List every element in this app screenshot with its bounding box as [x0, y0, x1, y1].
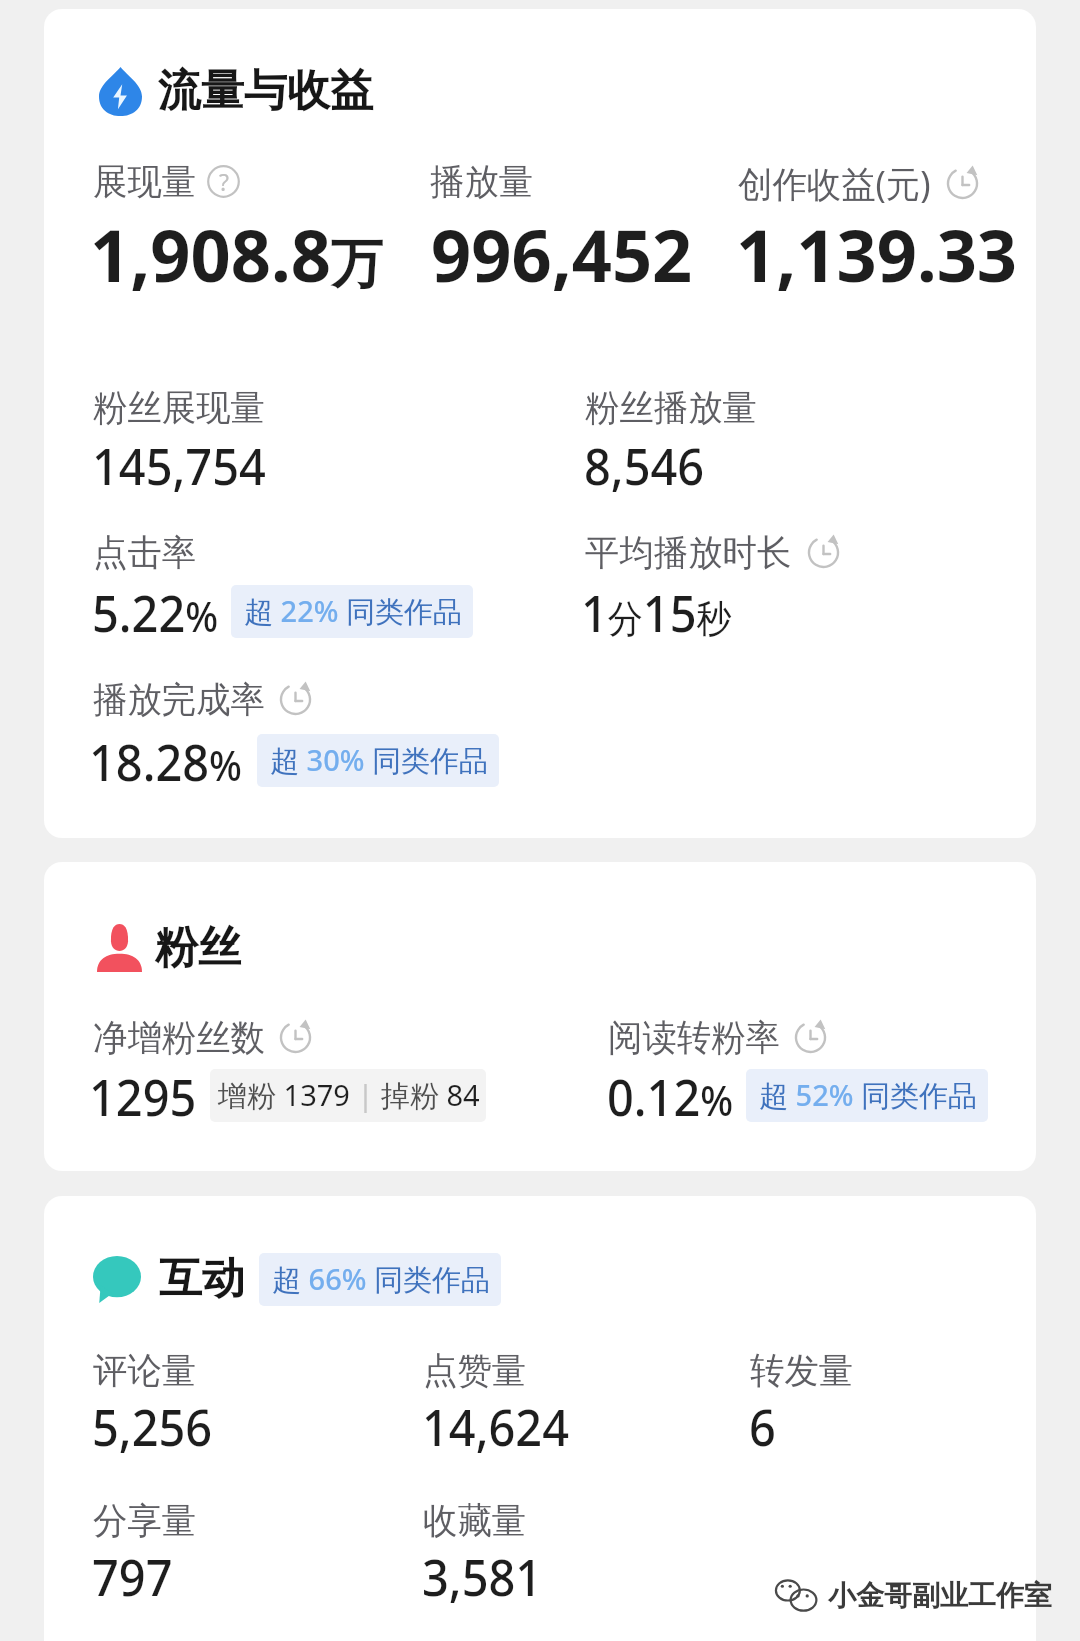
staticText: 1,908.8万: [90, 205, 383, 304]
staticText: 14,624: [422, 1391, 569, 1460]
staticText: 18.28%: [89, 726, 243, 795]
button[interactable]: 145,754: [92, 430, 281, 499]
button[interactable]: 1,139.33: [736, 205, 1040, 309]
staticText: 点击率: [93, 530, 196, 575]
button[interactable]: 展现量: [93, 159, 240, 204]
button[interactable]: 粉丝: [97, 921, 241, 975]
button[interactable]: 996,452: [431, 205, 714, 309]
button[interactable]: 分享量: [93, 1498, 201, 1543]
button[interactable]: 创作收益(元): [738, 159, 979, 208]
staticText: ?: [219, 166, 229, 197]
staticText: 净增粉丝数: [93, 1015, 265, 1060]
button[interactable]: 1,908.8万: [90, 205, 407, 309]
button[interactable]: 14,624: [422, 1391, 582, 1460]
staticText: 3,581: [422, 1541, 542, 1610]
button[interactable]: 797: [92, 1541, 180, 1610]
staticText: 超 30% 同类作品: [270, 740, 488, 780]
button[interactable]: 1295: [89, 1061, 486, 1130]
button[interactable]: 8,546: [584, 430, 715, 499]
staticText: 小金哥副业工作室: [828, 1578, 1052, 1613]
staticText: 增粉 1379 | 掉粉 84: [218, 1075, 480, 1115]
button[interactable]: 点赞量: [423, 1348, 531, 1393]
button[interactable]: 净增粉丝数: [93, 1015, 312, 1060]
staticText: 粉丝播放量: [585, 385, 757, 430]
staticText: 平均播放时长: [585, 530, 791, 575]
staticText: 粉丝展现量: [93, 385, 265, 430]
button[interactable]: 刷新: [946, 167, 979, 200]
button[interactable]: 超 52% 同类作品: [759, 1075, 977, 1115]
button[interactable]: 粉丝展现量: [93, 385, 273, 430]
button[interactable]: 平均播放时长: [585, 530, 840, 575]
staticText: 1295: [89, 1061, 197, 1130]
button[interactable]: 5.22%: [92, 577, 473, 646]
staticText: 转发量: [750, 1348, 853, 1393]
button[interactable]: 帮助: [207, 165, 240, 198]
button[interactable]: 转发量: [750, 1348, 858, 1393]
staticText: 超 52% 同类作品: [759, 1075, 977, 1115]
staticText: 145,754: [92, 430, 266, 499]
staticText: 分享量: [93, 1498, 196, 1543]
staticText: 996,452: [431, 205, 693, 304]
staticText: 5,256: [92, 1391, 212, 1460]
button[interactable]: 刷新: [794, 1021, 827, 1054]
button[interactable]: 播放完成率: [93, 677, 312, 722]
staticText: 评论量: [93, 1348, 196, 1393]
button[interactable]: 粉丝播放量: [585, 385, 765, 430]
button[interactable]: 阅读转粉率: [608, 1015, 827, 1060]
staticText: 8,546: [584, 430, 704, 499]
staticText: 创作收益(元): [738, 159, 931, 208]
staticText: 6: [749, 1391, 777, 1460]
button[interactable]: 增粉 1379 | 掉粉 84: [218, 1075, 480, 1115]
staticText: 展现量: [93, 159, 196, 204]
staticText: 797: [92, 1541, 173, 1610]
button[interactable]: 6: [749, 1391, 779, 1460]
staticText: 互动: [159, 1252, 245, 1306]
staticText: 1,139.33: [736, 205, 1017, 304]
staticText: 粉丝: [155, 921, 241, 975]
button[interactable]: 小金哥副业工作室: [775, 1572, 1052, 1618]
staticText: 5.22%: [92, 577, 219, 646]
button[interactable]: 点击率: [93, 530, 201, 575]
staticText: 0.12%: [607, 1061, 734, 1130]
button[interactable]: 3,581: [422, 1541, 553, 1610]
staticText: 流量与收益: [158, 64, 373, 118]
staticText: 播放完成率: [93, 677, 265, 722]
staticText: 超 66% 同类作品: [272, 1259, 490, 1299]
button[interactable]: 刷新: [279, 683, 312, 716]
staticText: 阅读转粉率: [608, 1015, 780, 1060]
staticText: 播放量: [430, 159, 533, 204]
button[interactable]: 播放量: [430, 159, 538, 204]
button[interactable]: 刷新: [279, 1021, 312, 1054]
staticText: 超 22% 同类作品: [244, 591, 462, 631]
button[interactable]: 评论量: [93, 1348, 201, 1393]
button[interactable]: 超 30% 同类作品: [270, 740, 488, 780]
staticText: 点赞量: [423, 1348, 526, 1393]
button[interactable]: 5,256: [92, 1391, 223, 1460]
button[interactable]: 1分15秒: [581, 577, 745, 646]
button[interactable]: 0.12%: [607, 1061, 988, 1130]
button[interactable]: 超 66% 同类作品: [272, 1259, 490, 1299]
button[interactable]: 超 22% 同类作品: [244, 591, 462, 631]
button[interactable]: 刷新: [807, 536, 840, 569]
button[interactable]: 收藏量: [423, 1498, 531, 1543]
button[interactable]: 互动: [93, 1252, 501, 1306]
button[interactable]: 18.28%: [89, 726, 499, 795]
button[interactable]: 流量与收益: [99, 64, 373, 118]
staticText: 1分15秒: [581, 577, 732, 646]
staticText: 收藏量: [423, 1498, 526, 1543]
